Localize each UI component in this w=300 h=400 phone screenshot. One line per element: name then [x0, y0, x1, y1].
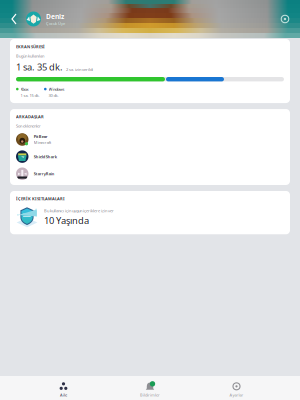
staticText: Son eklenenler	[16, 123, 41, 129]
staticText: Deniz	[46, 12, 64, 21]
staticText: İÇERİK KISITLAMALARI	[16, 196, 65, 201]
staticText: PitBear	[34, 134, 48, 139]
staticText: Bu kullanıcı için uygun içeriklere izin …	[44, 208, 114, 213]
staticText: StarryRain	[34, 171, 55, 176]
staticText: Windows	[49, 86, 65, 92]
staticText: 30 dk.	[49, 93, 59, 98]
button[interactable]: Settings	[278, 12, 292, 26]
staticText: Aile	[60, 392, 67, 398]
staticText: 1 sa. 35 dk.	[16, 61, 63, 73]
button[interactable]: Back	[8, 6, 22, 32]
staticText: Xbox	[21, 86, 29, 92]
staticText: Bugün kullanılan	[16, 53, 44, 59]
button[interactable]: PitBear	[16, 129, 284, 146]
staticText: 10 Yaşında	[44, 214, 89, 227]
button[interactable]: Ayarlar	[213, 378, 259, 398]
staticText: 2 sa. izin verildi	[66, 67, 93, 72]
button[interactable]: ShieldShark	[16, 146, 284, 163]
staticText: Bildirimler	[140, 392, 160, 398]
staticText: 1 sa. 15 dk.	[21, 93, 40, 98]
staticText: Çocuk Üye	[46, 21, 65, 26]
button[interactable]: Aile	[40, 378, 86, 398]
button[interactable]: StarryRain	[16, 163, 284, 180]
button[interactable]: Bildirimler	[127, 378, 173, 398]
staticText: Ayarlar	[229, 392, 243, 398]
staticText: ARKADAŞLAR	[16, 114, 44, 119]
staticText: ShieldShark	[34, 154, 57, 159]
staticText: Minecraft	[34, 140, 51, 145]
staticText: EKRAN SÜRESİ	[16, 44, 45, 49]
